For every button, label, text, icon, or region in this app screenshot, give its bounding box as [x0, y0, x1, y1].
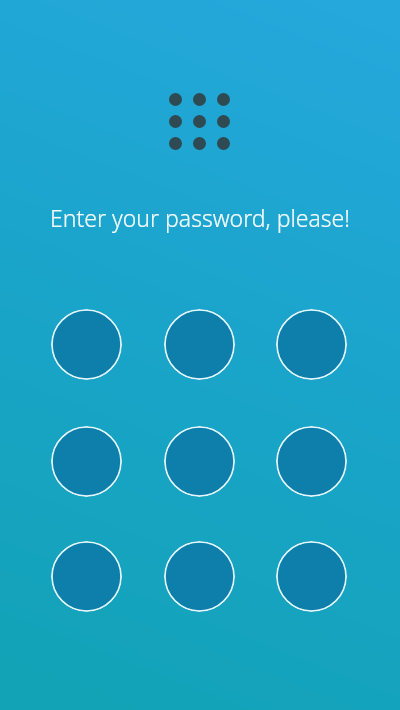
- staticText: Enter your password, please!: [0, 202, 400, 233]
- button[interactable]: Pattern dot: [51, 541, 122, 612]
- button[interactable]: Pattern dot: [164, 426, 235, 497]
- button[interactable]: Pattern dot: [276, 309, 347, 380]
- other: App logo: [169, 93, 231, 155]
- button[interactable]: Pattern dot: [276, 426, 347, 497]
- button[interactable]: Pattern dot: [51, 426, 122, 497]
- button[interactable]: Pattern dot: [164, 541, 235, 612]
- button[interactable]: Pattern dot: [164, 309, 235, 380]
- button[interactable]: Pattern dot: [51, 309, 122, 380]
- button[interactable]: Pattern dot: [276, 541, 347, 612]
